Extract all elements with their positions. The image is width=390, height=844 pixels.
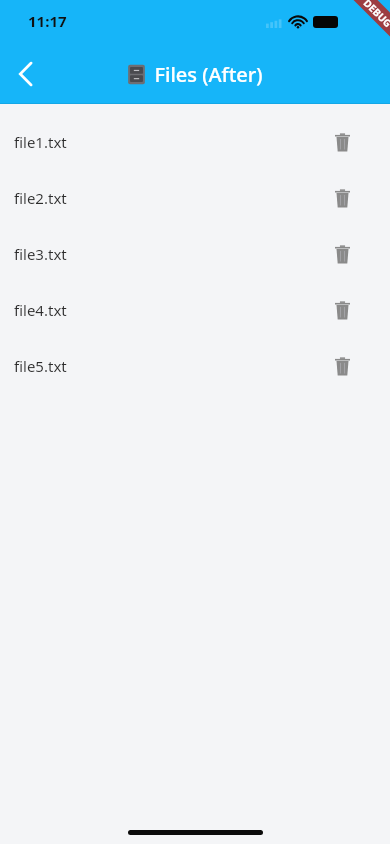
button[interactable]: file1.txt xyxy=(0,114,390,170)
staticText: DEBUG xyxy=(361,0,390,30)
button[interactable]: file3.txt xyxy=(0,226,390,282)
button[interactable]: Delete file5.txt xyxy=(324,348,360,384)
staticText: 11:17 xyxy=(28,11,67,31)
staticText: Files (After) xyxy=(154,61,263,88)
button[interactable]: file2.txt xyxy=(0,170,390,226)
staticText: file4.txt xyxy=(14,300,324,320)
button[interactable]: Delete file3.txt xyxy=(324,236,360,272)
button[interactable]: Back xyxy=(0,44,52,104)
staticText: file2.txt xyxy=(14,188,324,208)
staticText: file1.txt xyxy=(14,132,324,152)
button[interactable]: file5.txt xyxy=(0,338,390,394)
button[interactable]: Delete file2.txt xyxy=(324,180,360,216)
staticText: file5.txt xyxy=(14,356,324,376)
button[interactable]: Delete file4.txt xyxy=(324,292,360,328)
button[interactable]: Delete file1.txt xyxy=(324,124,360,160)
staticText: file3.txt xyxy=(14,244,324,264)
button[interactable]: file4.txt xyxy=(0,282,390,338)
